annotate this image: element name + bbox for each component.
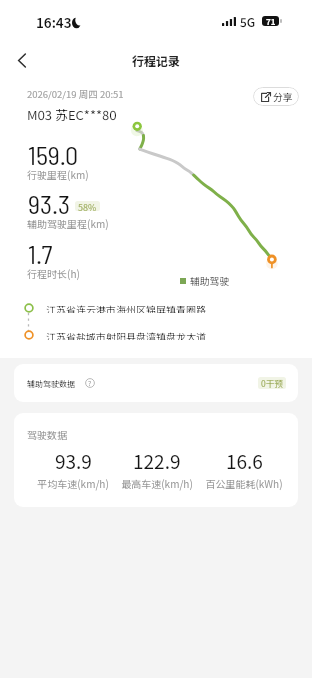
staticText: 58% [78,201,97,211]
staticText: 16.6 [226,447,263,475]
staticText: 驾驶数据 [27,427,67,441]
staticText: 平均车速(km/h) [37,476,109,490]
staticText: 最高车速(km/h) [121,476,193,490]
staticText: 16:43 [36,12,72,32]
button[interactable]: 江苏省盐城市射阳县盘湾镇盘龙大道 [24,329,206,340]
staticText: 93.9 [55,447,92,475]
button[interactable]: 分享 [253,87,299,106]
button[interactable]: 江苏省连云港市海州区锦屏镇青圈路 [24,302,206,313]
staticText: 分享 [273,90,293,104]
staticText: 1.7 [28,238,53,269]
staticText: 辅助驾驶 [190,274,230,288]
staticText: 2026/02/19 周四 20:51 [27,87,124,101]
staticText: 行驶里程(km) [27,167,89,181]
staticText: 辅助驾驶里程(km) [27,216,109,230]
staticText: M03 苏EC***80 [27,105,117,124]
staticText: 71 [266,16,276,26]
staticText: 百公里能耗(kWh) [205,476,283,490]
staticText: 行程记录 [132,52,181,69]
staticText: 122.9 [133,447,181,475]
staticText: 0干预 [261,377,283,389]
staticText: 行程时长(h) [27,266,80,280]
staticText: ? [88,378,92,388]
staticText: 江苏省盐城市射阳县盘湾镇盘龙大道 [46,329,206,340]
staticText: 辅助驾驶数据 [27,378,75,390]
button[interactable]: 辅助驾驶数据 [14,364,298,402]
staticText: 93.3 [28,188,71,219]
staticText: 江苏省连云港市海州区锦屏镇青圈路 [46,302,206,313]
staticText: 159.0 [28,139,79,170]
button[interactable]: Back [5,43,39,77]
staticText: 5G [240,13,256,30]
